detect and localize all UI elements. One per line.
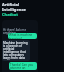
staticText: Machine learning is a branch of artifici… (3, 41, 29, 60)
staticText: Chatbot (2, 12, 19, 17)
staticText: Artificial (2, 2, 20, 7)
button[interactable]: Thanks! Can you give me an example? (9, 62, 37, 70)
button[interactable]: Machine learning is a branch of artifici… (2, 40, 30, 61)
button[interactable]: What is machine learning? (8, 33, 37, 39)
staticText: Hi there! Ask me anything (3, 28, 29, 35)
staticText: Intelligence (2, 7, 26, 12)
staticText: Thanks! Can you give me an example? (10, 63, 36, 69)
staticText: What is machine learning? (9, 33, 36, 39)
